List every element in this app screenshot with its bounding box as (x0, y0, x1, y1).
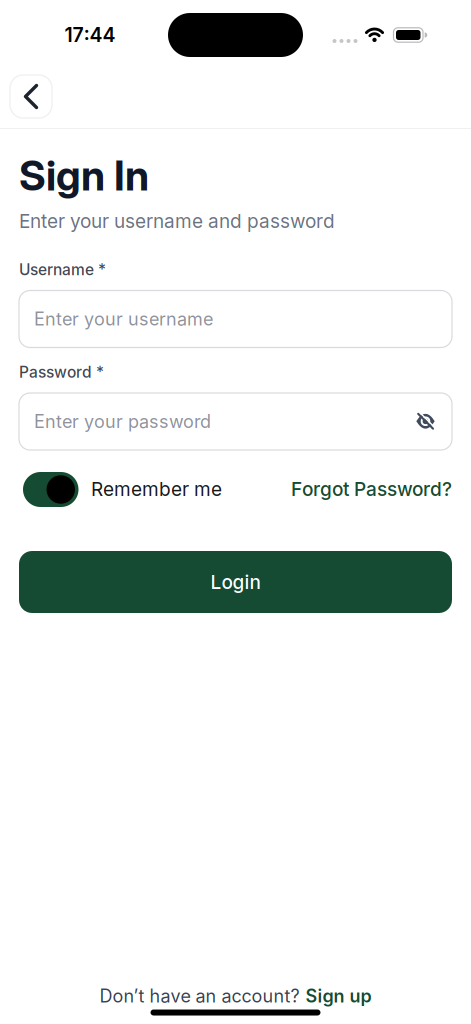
staticText: Sign up (305, 985, 371, 1007)
staticText: Don’t have an account? (99, 985, 299, 1007)
button[interactable]: Back (10, 75, 52, 118)
button[interactable]: Username (19, 290, 452, 347)
staticText: Enter your username (34, 308, 213, 330)
staticText: Forgot Password? (291, 477, 452, 500)
staticText: Remember me (91, 477, 222, 500)
staticText: Login (210, 570, 260, 593)
button[interactable]: Show password (416, 413, 435, 430)
staticText: Enter your username and password (19, 209, 335, 232)
button[interactable]: Forgot Password? (291, 477, 452, 500)
button[interactable]: Password (19, 393, 452, 450)
staticText: Sign In (19, 151, 149, 200)
staticText: Password * (19, 363, 104, 381)
button[interactable]: Sign up (305, 985, 371, 1007)
staticText: 17:44 (64, 23, 115, 47)
button[interactable]: Login (19, 551, 452, 613)
staticText: Username * (19, 260, 106, 279)
button[interactable]: Remember me (23, 472, 78, 507)
staticText: Enter your password (34, 411, 211, 432)
